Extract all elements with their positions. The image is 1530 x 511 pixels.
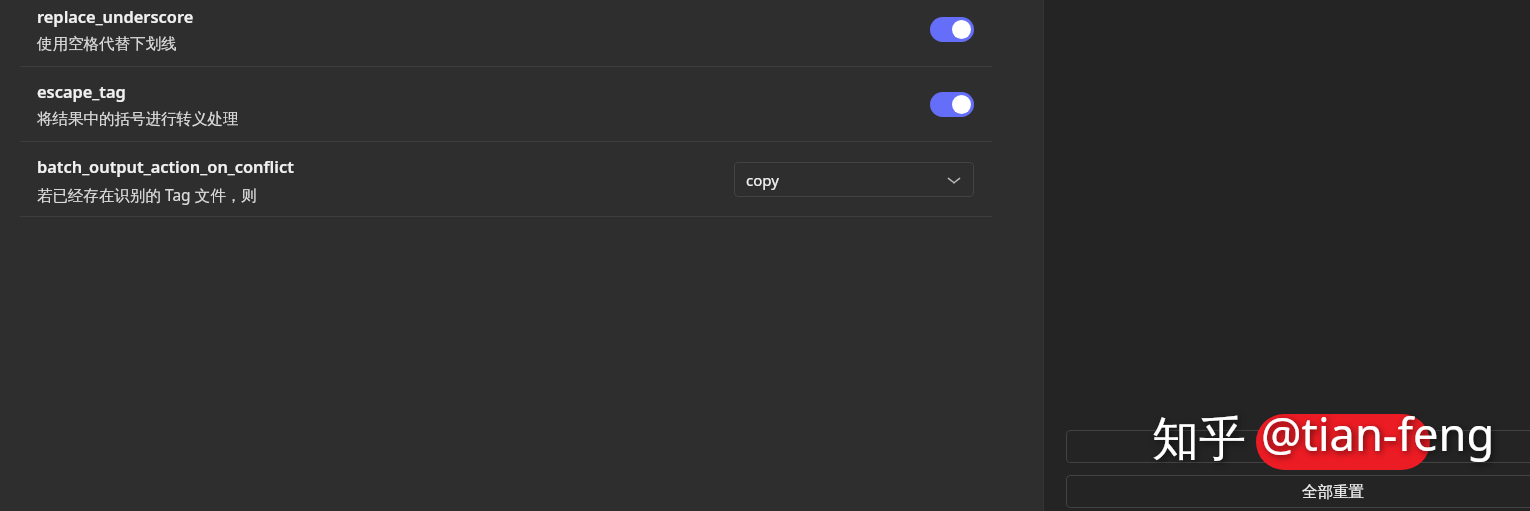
staticText: escape_tag xyxy=(37,80,126,102)
staticText: @tian-feng xyxy=(1261,403,1495,465)
staticText: 若已经存在识别的 Tag 文件，则 xyxy=(37,184,257,205)
staticText: replace_underscore xyxy=(37,5,194,27)
staticText: 启动 xyxy=(1318,437,1349,457)
staticText: 全部重置 xyxy=(1302,482,1364,502)
staticText: batch_output_action_on_conflict xyxy=(37,155,294,177)
button[interactable]: 全部重置 xyxy=(1066,475,1530,508)
button[interactable]: Toggle switch, on xyxy=(930,92,974,117)
button[interactable]: replace_underscore xyxy=(0,0,1044,67)
staticText: 将结果中的括号进行转义处理 xyxy=(37,109,239,129)
staticText: copy xyxy=(746,170,779,190)
staticText: 使用空格代替下划线 xyxy=(37,34,177,54)
button[interactable]: escape_tag xyxy=(0,67,1044,142)
button[interactable]: batch_output_action_on_conflict xyxy=(0,142,1044,217)
button[interactable]: Toggle switch, on xyxy=(930,17,974,42)
staticText: 知乎 xyxy=(1152,410,1246,469)
button[interactable]: copy xyxy=(734,162,974,197)
button[interactable]: 启动 xyxy=(1066,430,1530,463)
